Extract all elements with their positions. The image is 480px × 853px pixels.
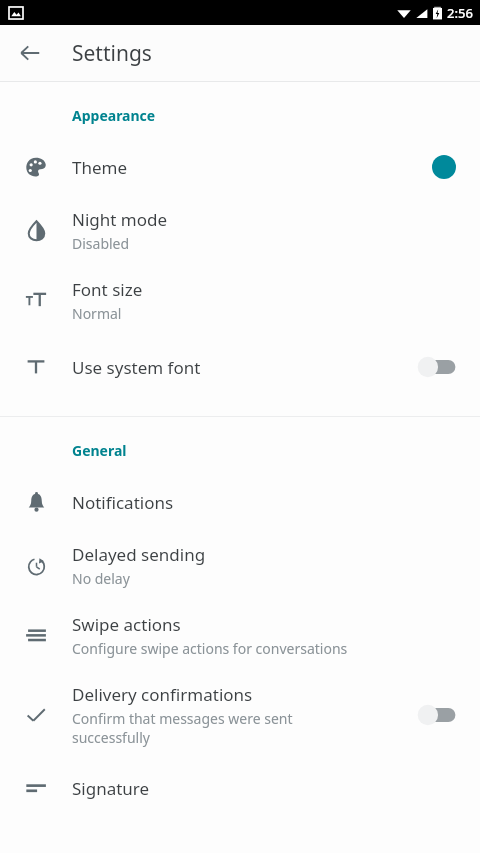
staticText: Delayed sending [72,543,206,566]
staticText: Confirm that messages were sent successf… [72,709,293,747]
staticText: No delay [72,569,130,588]
staticText: Appearance [72,106,156,125]
staticText: Theme [72,156,128,179]
staticText: 2:56 [447,4,473,22]
staticText: Configure swipe actions for conversation… [72,639,348,658]
button[interactable]: Back [10,33,50,73]
staticText: Use system font [72,356,201,379]
staticText: Delivery confirmations [72,683,253,706]
button[interactable]: Swipe actions [0,600,480,670]
button[interactable]: Toggle [414,700,460,730]
button[interactable]: Delayed sending [0,530,480,600]
button[interactable]: Use system font [0,335,480,399]
button[interactable]: Theme [0,139,480,195]
staticText: Font size [72,278,143,301]
staticText: Swipe actions [72,613,181,636]
button[interactable]: Font size [0,265,480,335]
staticText: Normal [72,304,122,323]
button[interactable]: Notifications [0,474,480,530]
staticText: Disabled [72,234,130,253]
button[interactable]: Signature [0,760,480,816]
staticText: General [72,441,127,460]
staticText: Night mode [72,208,168,231]
button[interactable]: Toggle [414,352,460,382]
staticText: Settings [72,39,152,68]
button[interactable]: Delivery confirmations [0,670,480,760]
staticText: Notifications [72,491,174,514]
button[interactable]: Night mode [0,195,480,265]
staticText: Signature [72,777,150,800]
